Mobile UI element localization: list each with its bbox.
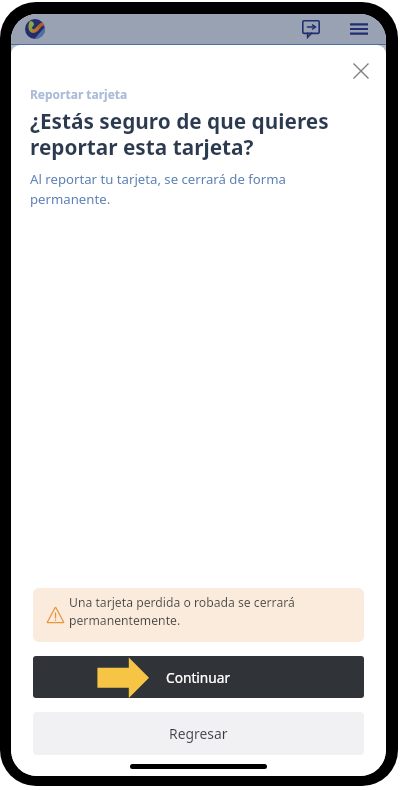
staticText: Una tarjeta perdida o robada se cerrará … xyxy=(69,594,354,628)
other: Logo xyxy=(25,19,45,39)
staticText: Continuar xyxy=(166,668,231,687)
staticText: Reportar tarjeta xyxy=(30,86,128,102)
button[interactable]: Menu xyxy=(345,15,373,43)
staticText: ¿Estás seguro de que quieres reportar es… xyxy=(30,107,363,162)
staticText: Regresar xyxy=(169,724,228,743)
button[interactable]: Chat xyxy=(297,15,325,43)
button[interactable]: Close xyxy=(347,57,375,85)
button[interactable]: Continuar xyxy=(33,656,364,698)
staticText: Al reportar tu tarjeta, se cerrará de fo… xyxy=(30,170,363,208)
button[interactable]: Regresar xyxy=(33,712,364,755)
